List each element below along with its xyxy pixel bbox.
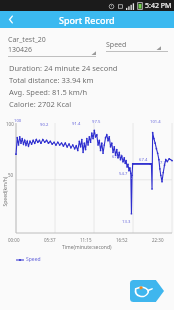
staticText: 05:37 [44, 237, 56, 243]
staticText: 67.1 [112, 154, 121, 160]
staticText: 101.4 [150, 119, 161, 125]
staticText: 5:42 PM [145, 1, 172, 11]
staticText: 91.4 [72, 121, 81, 127]
staticText: Speed(km/h) [1, 176, 8, 206]
staticText: 11:15 [80, 237, 92, 243]
staticText: 100 [14, 118, 22, 124]
staticText: Calorie: 2702 Kcal [9, 99, 72, 109]
button[interactable]: Speed [106, 39, 168, 52]
staticText: 13.3 [122, 219, 131, 225]
staticText: Speed [26, 256, 41, 263]
staticText: 67.4 [139, 157, 148, 163]
staticText: 54.7 [119, 171, 128, 177]
staticText: 00:00 [8, 237, 20, 243]
staticText: 90.2 [40, 122, 49, 128]
button[interactable]: Car_test_20130426 [8, 34, 96, 57]
staticText: 16:52 [116, 237, 128, 243]
staticText: Time(minute:second) [62, 244, 112, 251]
button[interactable]: Share to Weibo [130, 280, 164, 302]
staticText: 7.7 [160, 160, 166, 166]
staticText: Total distance: 33.94 km [9, 75, 94, 85]
staticText: Avg. Speed: 81.5 km/h [9, 87, 88, 97]
staticText: 97.5 [92, 119, 101, 125]
staticText: 100 [6, 121, 14, 127]
staticText: Sport Record [59, 14, 115, 26]
staticText: 22:30 [152, 237, 164, 243]
staticText: Duration: 24 minute 24 second [9, 63, 118, 73]
staticText: Speed [106, 40, 127, 50]
staticText: Car_test_20130426 [8, 35, 49, 55]
staticText: 50 [8, 172, 14, 178]
button[interactable]: Back [0, 11, 22, 28]
